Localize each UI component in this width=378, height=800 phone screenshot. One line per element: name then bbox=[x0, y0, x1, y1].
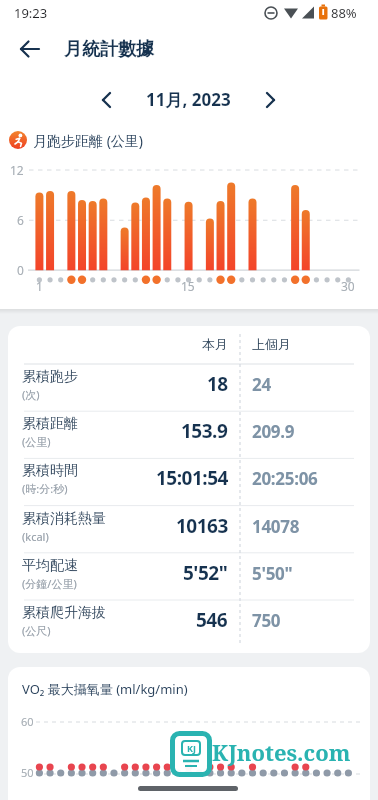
staticText: 5'50" bbox=[252, 562, 293, 585]
staticText: (時:分:秒) bbox=[22, 481, 68, 496]
staticText: 19:23 bbox=[14, 4, 48, 22]
staticText: 0 bbox=[17, 262, 24, 278]
staticText: 月統計數據 bbox=[64, 38, 154, 61]
staticText: 750 bbox=[252, 609, 281, 632]
staticText: (kcal) bbox=[22, 529, 49, 544]
staticText: 上個月 bbox=[252, 336, 291, 352]
staticText: 平均配速 bbox=[22, 557, 78, 575]
staticText: 153.9 bbox=[181, 418, 228, 444]
staticText: 月跑步距離 (公里) bbox=[33, 131, 144, 150]
staticText: (公里) bbox=[22, 434, 51, 449]
staticText: 累積爬升海拔 bbox=[22, 604, 106, 622]
button[interactable] bbox=[12, 31, 48, 67]
staticText: 20:25:06 bbox=[252, 467, 318, 490]
staticText: 30 bbox=[341, 278, 355, 294]
staticText: KJ bbox=[187, 742, 196, 754]
staticText: 5'52" bbox=[183, 560, 228, 586]
staticText: 15:01:54 bbox=[156, 465, 228, 491]
staticText: 15 bbox=[181, 278, 195, 294]
staticText: 累積消耗熱量 bbox=[22, 510, 106, 528]
staticText: 14078 bbox=[252, 515, 300, 538]
staticText: 本月 bbox=[202, 336, 228, 352]
staticText: 12 bbox=[10, 162, 24, 178]
button[interactable] bbox=[90, 84, 122, 116]
button[interactable] bbox=[255, 84, 287, 116]
staticText: 累積跑步 bbox=[22, 368, 78, 386]
staticText: 11月, 2023 bbox=[146, 88, 231, 111]
staticText: 24 bbox=[252, 373, 271, 396]
staticText: 6 bbox=[17, 212, 24, 228]
staticText: 累積時間 bbox=[22, 462, 78, 480]
staticText: (分鐘/公里) bbox=[22, 576, 77, 591]
staticText: 10163 bbox=[176, 513, 228, 539]
staticText: KJnotes.com bbox=[212, 737, 351, 767]
staticText: 累積距離 bbox=[22, 415, 78, 433]
staticText: (次) bbox=[22, 387, 40, 402]
staticText: 88% bbox=[331, 4, 357, 22]
staticText: 546 bbox=[196, 607, 228, 633]
staticText: (公尺) bbox=[22, 623, 51, 638]
staticText: 60 bbox=[21, 714, 34, 729]
staticText: 18 bbox=[207, 371, 228, 397]
staticText: 50 bbox=[21, 765, 34, 780]
staticText: VO₂ 最大攝氧量 (ml/kg/min) bbox=[22, 680, 188, 698]
staticText: 1 bbox=[36, 278, 43, 294]
staticText: 209.9 bbox=[252, 420, 295, 443]
